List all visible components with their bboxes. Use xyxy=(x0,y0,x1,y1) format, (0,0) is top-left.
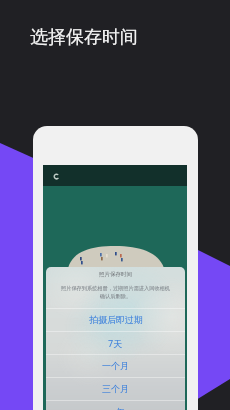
staticText: 选择保存时间 xyxy=(30,26,138,49)
staticText: 7天 xyxy=(108,337,123,349)
button[interactable]: 7天 xyxy=(46,331,185,354)
button[interactable]: 一年 xyxy=(46,400,185,410)
staticText: 照片保存到系统相册，过期照片需进入回收相机 确认后删除。 xyxy=(46,285,185,299)
staticText: 三个月 xyxy=(102,383,129,394)
staticText: 一年 xyxy=(107,406,125,410)
button[interactable]: 三个月 xyxy=(46,377,185,400)
button[interactable]: 拍摄后即过期 xyxy=(46,308,185,331)
other: Refresh xyxy=(53,173,60,180)
staticText: 一个月 xyxy=(102,360,129,371)
button[interactable]: 一个月 xyxy=(46,354,185,377)
staticText: 拍摄后即过期 xyxy=(89,314,143,325)
staticText: 照片保存时间 xyxy=(46,271,185,278)
